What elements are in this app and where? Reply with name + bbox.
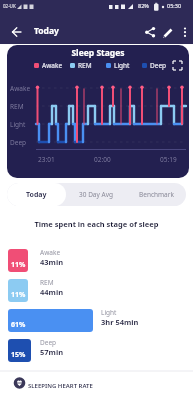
button[interactable]: [178, 24, 192, 40]
staticText: 30 Day Avg: [79, 190, 113, 199]
staticText: REM: [10, 102, 24, 111]
staticText: Time spent in each stage of sleep: [0, 219, 193, 229]
staticText: 05:30: [167, 2, 182, 9]
button[interactable]: Benchmark: [126, 183, 186, 206]
button[interactable]: 61%: [8, 309, 93, 332]
staticText: Deep: [150, 61, 167, 70]
staticText: Sleep Stages: [7, 47, 189, 59]
staticText: 11%: [11, 290, 26, 300]
staticText: 3hr 54min: [101, 317, 139, 327]
staticText: SLEEPING HEART RATE: [28, 382, 93, 390]
button[interactable]: SLEEPING HEART RATE: [0, 372, 193, 400]
button[interactable]: [8, 24, 26, 42]
staticText: 02-UK: [3, 3, 16, 9]
staticText: 57min: [40, 347, 64, 357]
staticText: 43min: [40, 257, 64, 267]
staticText: Today: [34, 25, 59, 37]
staticText: REM: [78, 61, 92, 70]
staticText: Awake: [40, 248, 61, 257]
staticText: 23:01: [38, 155, 55, 164]
button[interactable]: Today: [7, 183, 66, 206]
staticText: 02:00: [94, 155, 111, 164]
staticText: Light: [101, 308, 117, 317]
staticText: Light: [114, 61, 130, 70]
staticText: REM: [40, 278, 54, 287]
button[interactable]: 11%: [8, 249, 28, 272]
staticText: 15%: [11, 350, 26, 360]
button[interactable]: [160, 24, 176, 40]
staticText: Today: [26, 190, 47, 200]
button[interactable]: [142, 24, 158, 40]
button[interactable]: 15%: [8, 339, 31, 362]
staticText: Light: [10, 120, 26, 129]
staticText: Benchmark: [139, 190, 174, 199]
staticText: Deep: [40, 338, 57, 347]
staticText: Awake: [10, 84, 31, 93]
staticText: 05:19: [160, 155, 177, 164]
staticText: Deep: [10, 138, 27, 147]
button[interactable]: 30 Day Avg: [66, 183, 126, 206]
staticText: 44min: [40, 287, 64, 297]
button[interactable]: 11%: [8, 279, 28, 302]
staticText: Awake: [42, 61, 63, 70]
staticText: 82%: [138, 2, 149, 9]
staticText: 61%: [11, 320, 26, 330]
staticText: 11%: [11, 260, 26, 270]
